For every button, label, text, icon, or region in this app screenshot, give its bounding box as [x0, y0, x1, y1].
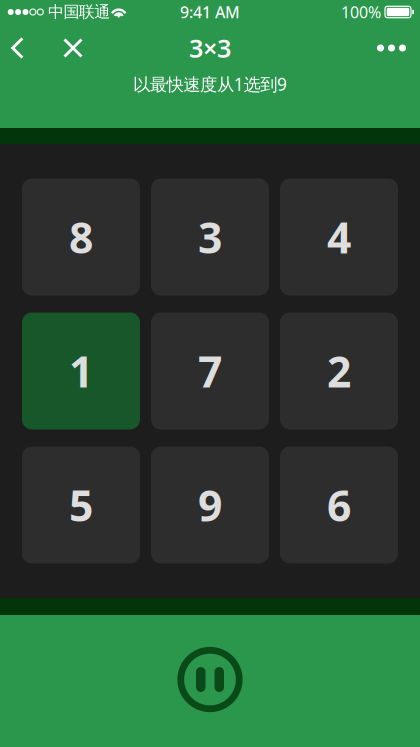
button[interactable]: 4 — [280, 178, 398, 295]
button[interactable]: 9 — [151, 446, 269, 563]
staticText: 5 — [69, 477, 93, 533]
staticText: 以最快速度从1选到9 — [133, 72, 287, 95]
button[interactable]: More — [367, 26, 416, 70]
staticText: 100% — [341, 1, 381, 23]
button[interactable]: 6 — [280, 446, 398, 563]
button[interactable]: Back — [0, 26, 35, 70]
button[interactable]: Close — [35, 26, 111, 70]
staticText: 7 — [198, 343, 222, 399]
staticText: 1 — [69, 343, 93, 399]
staticText: 9:41 AM — [180, 1, 240, 23]
staticText: 8 — [69, 209, 93, 265]
staticText: 6 — [327, 477, 351, 533]
button[interactable]: 8 — [22, 178, 140, 295]
button[interactable]: 5 — [22, 446, 140, 563]
button[interactable]: Pause — [177, 646, 243, 712]
staticText: 2 — [327, 343, 351, 399]
staticText: 中国联通 — [48, 2, 110, 22]
staticText: 4 — [327, 209, 351, 265]
staticText: 3 — [198, 209, 222, 265]
button[interactable]: 7 — [151, 312, 269, 429]
button[interactable]: 3 — [151, 178, 269, 295]
button[interactable]: 2 — [280, 312, 398, 429]
staticText: 9 — [198, 477, 222, 533]
staticText: 3×3 — [189, 31, 231, 65]
button[interactable]: 1 — [22, 312, 140, 429]
